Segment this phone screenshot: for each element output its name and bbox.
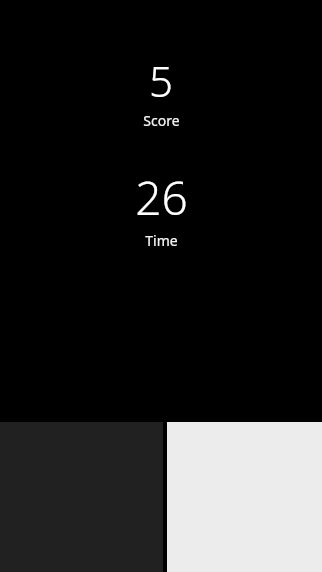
staticText: Score: [143, 111, 180, 130]
staticText: 5: [149, 52, 173, 109]
staticText: 26: [135, 166, 188, 229]
staticText: Time: [145, 231, 178, 250]
